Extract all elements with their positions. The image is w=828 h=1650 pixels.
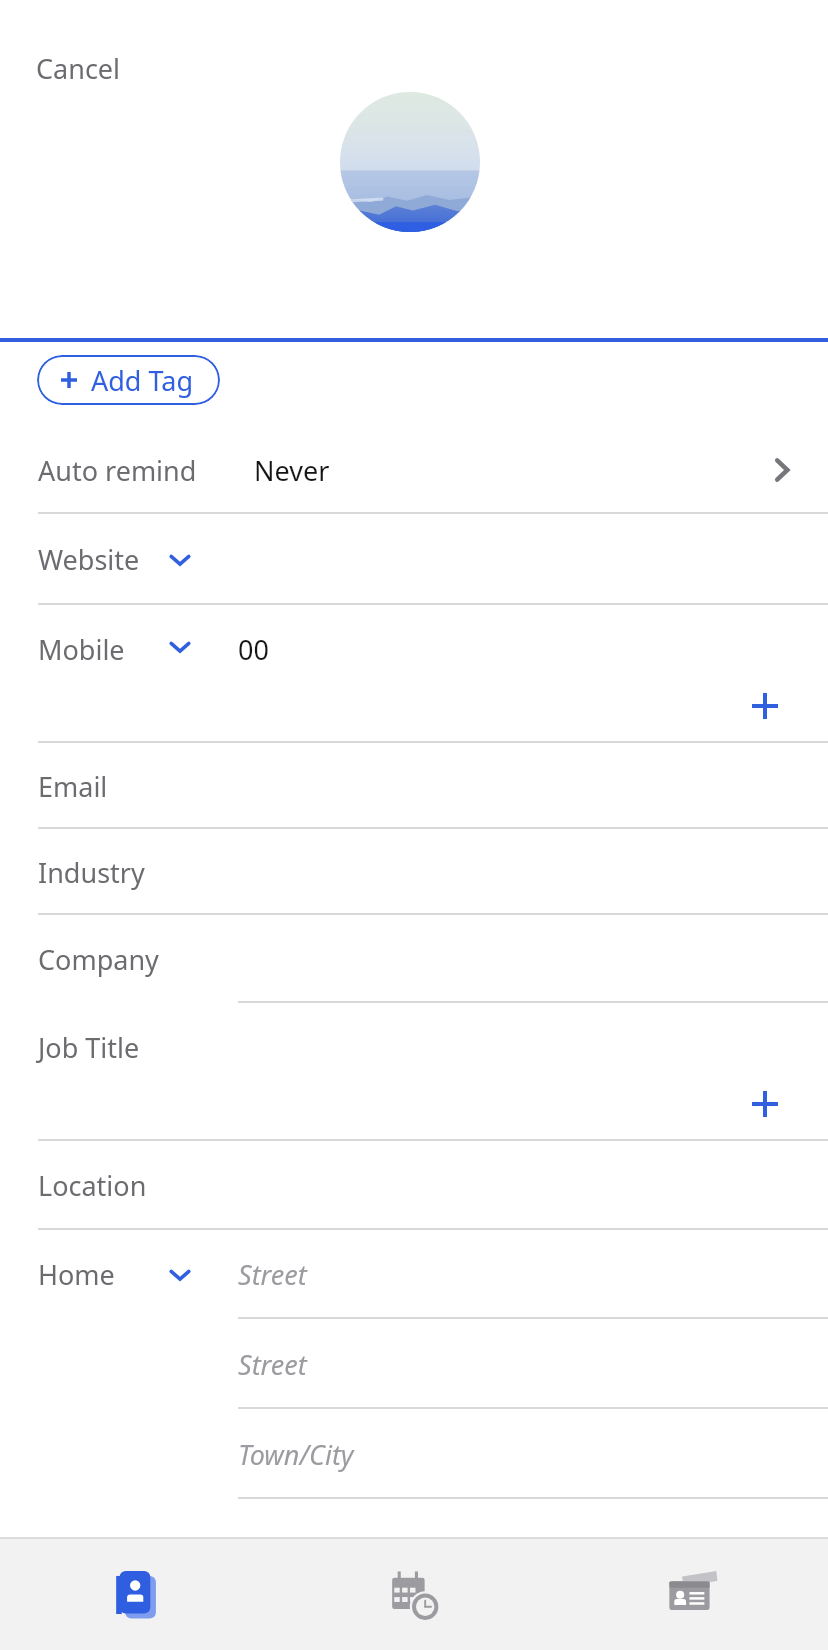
staticText: Mobile [38, 631, 125, 668]
button[interactable]: Phone type [160, 627, 200, 667]
button[interactable]: Cancel [30, 44, 127, 93]
button[interactable]: Contacts [0, 1539, 276, 1650]
other: Choose auto remind [760, 448, 804, 492]
button[interactable]: Job Title [0, 1003, 828, 1141]
button[interactable]: Schedule [276, 1539, 552, 1650]
staticText: Home [38, 1256, 115, 1293]
button[interactable]: Home [0, 1230, 828, 1319]
button[interactable]: Industry [0, 829, 828, 915]
button[interactable]: Street [0, 1319, 828, 1409]
button[interactable]: Company [0, 915, 828, 1003]
staticText: Industry [38, 854, 145, 891]
button[interactable]: Email [0, 743, 828, 829]
button[interactable]: Auto remind [0, 426, 828, 514]
button[interactable]: Mobile [0, 605, 828, 743]
staticText: Street [238, 1346, 307, 1383]
staticText: 00 [238, 631, 269, 668]
button[interactable]: Add phone number [742, 683, 788, 729]
button[interactable]: Address type [160, 1255, 200, 1295]
staticText: Cancel [36, 50, 121, 87]
button[interactable]: Add Tag [37, 355, 220, 405]
button[interactable]: Contact photo [340, 92, 480, 232]
staticText: Street [238, 1256, 307, 1293]
staticText: Add Tag [91, 362, 194, 399]
staticText: Company [38, 941, 159, 978]
button[interactable]: Cards [552, 1539, 828, 1650]
staticText: Website [38, 541, 140, 578]
button[interactable]: Website type [160, 540, 200, 580]
staticText: Location [38, 1167, 147, 1204]
button[interactable]: Add job title [742, 1081, 788, 1127]
button[interactable]: Website [0, 514, 828, 605]
staticText: Email [38, 768, 108, 805]
button[interactable]: Town/City [0, 1409, 828, 1499]
button[interactable]: Location [0, 1141, 828, 1230]
staticText: Job Title [38, 1029, 140, 1066]
staticText: Auto remind [38, 452, 197, 489]
staticText: Never [254, 452, 330, 489]
staticText: Town/City [238, 1436, 354, 1473]
